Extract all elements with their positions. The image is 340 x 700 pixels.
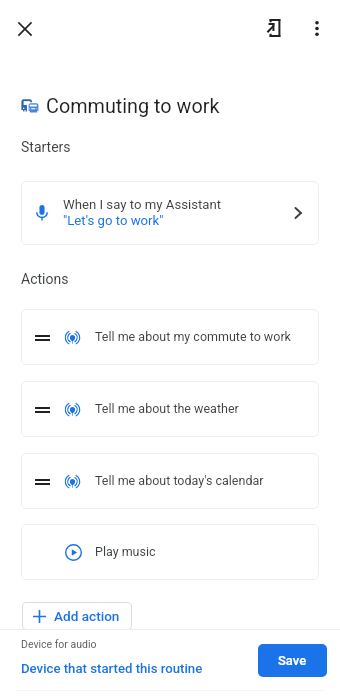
- button[interactable]: Send to device: [256, 9, 293, 46]
- button[interactable]: Play music: [21, 524, 319, 580]
- button[interactable]: Tell me about today's calendar: [21, 453, 319, 509]
- other: Open: [289, 204, 307, 222]
- button[interactable]: Save: [258, 644, 327, 677]
- staticText: Tell me about my commute to work: [95, 329, 291, 344]
- button[interactable]: Add action: [22, 602, 132, 630]
- staticText: Add action: [54, 608, 120, 624]
- staticText: Actions: [21, 271, 69, 287]
- staticText: Play music: [95, 544, 156, 559]
- button[interactable]: When I say to my Assistant: [21, 181, 319, 245]
- staticText: Save: [278, 653, 307, 668]
- staticText: Device that started this routine: [21, 661, 203, 676]
- staticText: When I say to my Assistant: [63, 197, 222, 212]
- staticText: Tell me about today's calendar: [95, 473, 264, 488]
- button[interactable]: Tell me about my commute to work: [21, 309, 319, 365]
- button[interactable]: More options: [298, 10, 335, 47]
- staticText: Commuting to work: [46, 95, 220, 118]
- button[interactable]: Close: [6, 10, 43, 47]
- staticText: Tell me about the weather: [95, 401, 239, 416]
- button[interactable]: Tell me about the weather: [21, 381, 319, 437]
- staticText: Starters: [21, 139, 71, 155]
- staticText: Device for audio: [21, 638, 97, 650]
- staticText: "Let's go to work": [63, 213, 164, 228]
